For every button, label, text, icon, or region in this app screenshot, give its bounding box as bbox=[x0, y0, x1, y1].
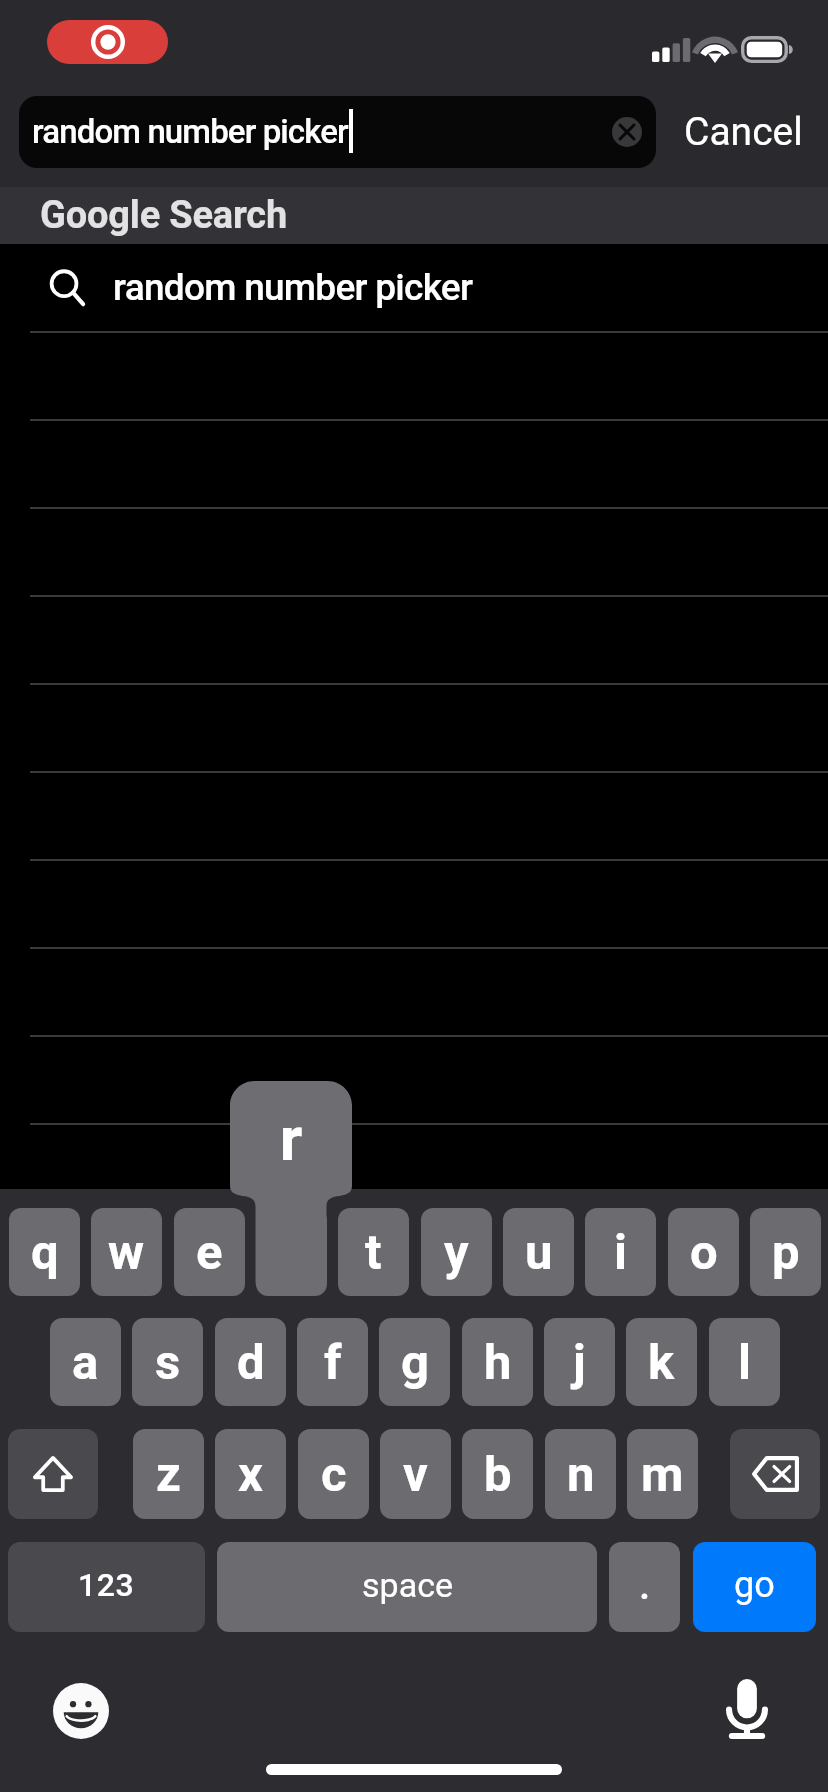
button[interactable]: Shift bbox=[8, 1429, 98, 1519]
staticText: Cancel bbox=[684, 109, 803, 155]
button[interactable]: . bbox=[609, 1542, 680, 1632]
button[interactable]: q bbox=[9, 1208, 80, 1296]
button[interactable]: d bbox=[215, 1318, 286, 1406]
button[interactable]: j bbox=[544, 1318, 615, 1406]
staticText: u bbox=[525, 1224, 553, 1281]
button[interactable]: w bbox=[91, 1208, 162, 1296]
button[interactable]: random number picker bbox=[19, 96, 656, 168]
button[interactable]: l bbox=[709, 1318, 780, 1406]
staticText: random number picker bbox=[113, 266, 473, 309]
button[interactable]: t bbox=[338, 1208, 409, 1296]
button[interactable]: i bbox=[585, 1208, 656, 1296]
staticText: j bbox=[573, 1334, 586, 1391]
button[interactable]: b bbox=[462, 1429, 533, 1519]
staticText: z bbox=[156, 1446, 181, 1503]
button[interactable]: z bbox=[133, 1429, 204, 1519]
staticText: o bbox=[690, 1224, 718, 1281]
staticText: v bbox=[403, 1446, 428, 1503]
button[interactable]: c bbox=[298, 1429, 369, 1519]
button[interactable]: go bbox=[693, 1542, 816, 1632]
staticText: x bbox=[238, 1446, 263, 1503]
button[interactable]: space bbox=[217, 1542, 597, 1632]
button[interactable]: Emoji keyboard bbox=[46, 1676, 116, 1746]
button[interactable]: random number picker bbox=[0, 244, 828, 331]
button[interactable]: n bbox=[545, 1429, 616, 1519]
staticText: g bbox=[401, 1334, 429, 1391]
button[interactable]: 123 bbox=[8, 1542, 205, 1632]
staticText: y bbox=[444, 1224, 469, 1281]
staticText: e bbox=[196, 1224, 223, 1281]
button[interactable]: v bbox=[380, 1429, 451, 1519]
staticText: random number picker bbox=[32, 112, 348, 151]
button[interactable]: m bbox=[627, 1429, 698, 1519]
button[interactable]: Clear text bbox=[612, 117, 642, 147]
button[interactable]: h bbox=[462, 1318, 533, 1406]
button[interactable]: g bbox=[379, 1318, 450, 1406]
staticText: go bbox=[734, 1564, 775, 1606]
staticText: . bbox=[639, 1562, 651, 1609]
staticText: h bbox=[484, 1334, 512, 1391]
button[interactable]: e bbox=[174, 1208, 245, 1296]
button[interactable]: x bbox=[215, 1429, 286, 1519]
button[interactable]: f bbox=[297, 1318, 368, 1406]
button[interactable]: a bbox=[50, 1318, 121, 1406]
staticText: b bbox=[484, 1446, 512, 1503]
staticText: n bbox=[567, 1446, 595, 1503]
staticText: d bbox=[237, 1334, 265, 1391]
button[interactable]: k bbox=[626, 1318, 697, 1406]
staticText: l bbox=[738, 1334, 751, 1391]
button[interactable]: Cancel bbox=[671, 96, 816, 168]
button[interactable]: y bbox=[421, 1208, 492, 1296]
button[interactable]: p bbox=[750, 1208, 821, 1296]
button[interactable]: o bbox=[668, 1208, 739, 1296]
button[interactable]: r bbox=[256, 1208, 327, 1296]
staticText: c bbox=[321, 1446, 347, 1503]
staticText: Google Search bbox=[40, 193, 287, 238]
button[interactable]: Backspace bbox=[730, 1429, 820, 1519]
button[interactable]: u bbox=[503, 1208, 574, 1296]
staticText: w bbox=[108, 1224, 145, 1281]
staticText: m bbox=[641, 1446, 684, 1503]
staticText: r bbox=[230, 1102, 352, 1175]
button[interactable]: s bbox=[132, 1318, 203, 1406]
staticText: p bbox=[772, 1224, 800, 1281]
staticText: i bbox=[614, 1224, 627, 1281]
staticText: 123 bbox=[78, 1566, 135, 1604]
staticText: k bbox=[648, 1334, 675, 1391]
button[interactable]: Stop screen recording bbox=[47, 20, 168, 64]
staticText: q bbox=[31, 1224, 59, 1281]
staticText: space bbox=[362, 1565, 453, 1605]
staticText: f bbox=[324, 1334, 342, 1391]
staticText: a bbox=[72, 1334, 99, 1391]
button[interactable]: Voice input bbox=[714, 1670, 780, 1748]
staticText: t bbox=[365, 1224, 382, 1281]
staticText: s bbox=[155, 1334, 181, 1391]
